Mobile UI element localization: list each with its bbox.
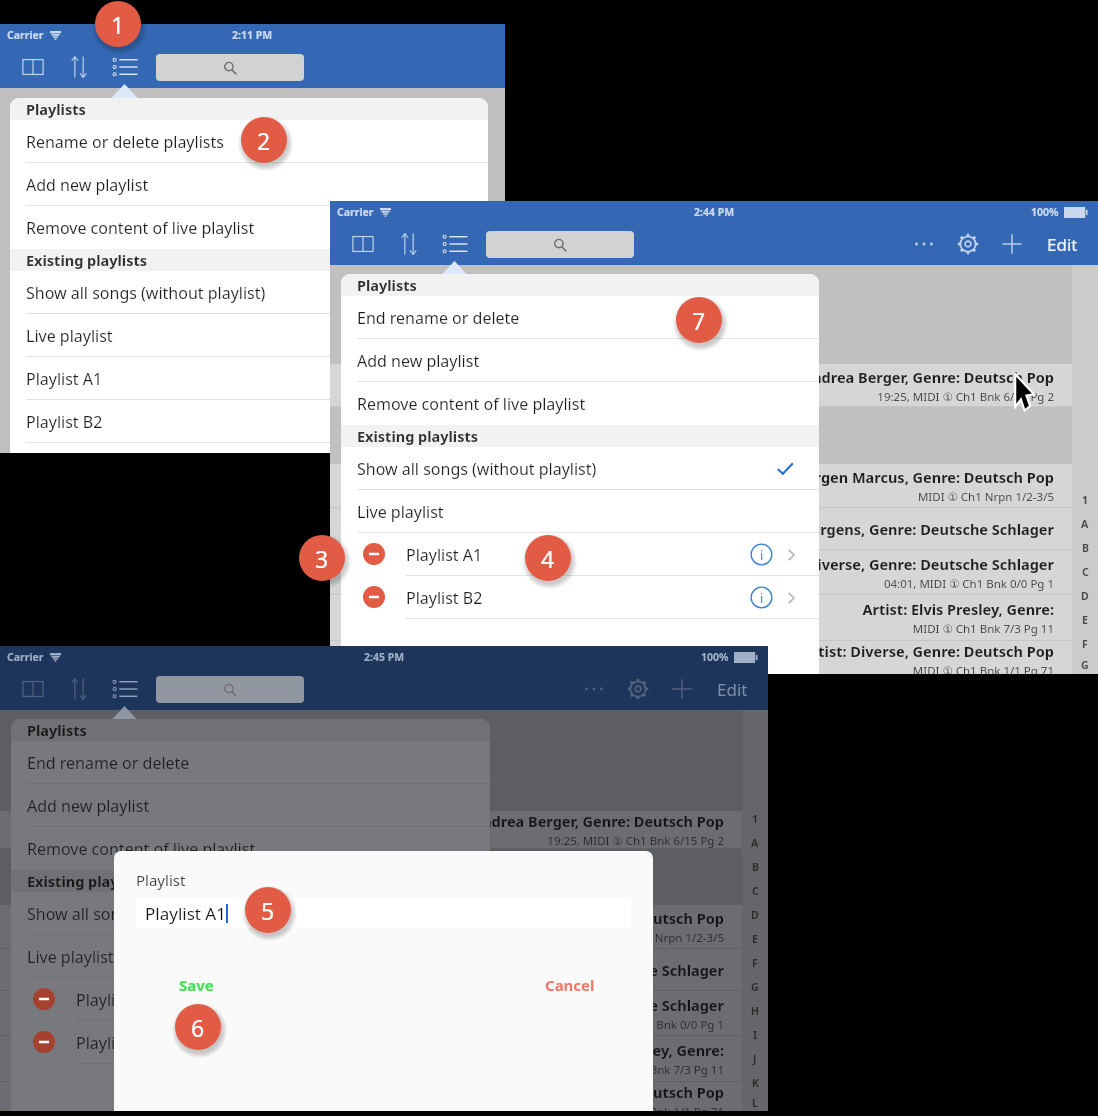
staticText: 04:01, MIDI ① Ch1 Bnk 0/0 Pg 1	[0, 1017, 724, 1033]
staticText: Rename or delete playlists	[26, 131, 224, 153]
staticText: 4	[541, 543, 555, 574]
button[interactable]: More	[907, 227, 941, 261]
button[interactable]: Live playlist	[11, 935, 490, 978]
staticText: Jürgen Marcus, Genre: Deutsch Pop	[0, 908, 724, 928]
button[interactable]: Show all songs (without playlist)	[11, 892, 490, 935]
button[interactable]: Playlists	[108, 50, 142, 84]
button[interactable]: Delete Playlist B2	[363, 586, 385, 608]
button[interactable]: Split view	[16, 672, 50, 706]
button[interactable]: Search	[486, 231, 634, 258]
button[interactable]: Jürgen Marcus, Genre: Deutsch Pop	[330, 464, 1072, 508]
button[interactable]: Andrea Berger, Genre: Deutsch Pop	[330, 364, 1072, 407]
staticText: Playlist A1	[406, 544, 483, 566]
button[interactable]: Delete Playlist A1	[363, 543, 385, 565]
staticText: 1	[111, 9, 125, 40]
button[interactable]: End rename or delete	[341, 296, 819, 339]
staticText: 1	[1082, 493, 1089, 507]
button[interactable]: Playlists	[438, 227, 472, 261]
staticText: Playlist B2	[76, 1032, 153, 1054]
button[interactable]: Delete Playlist A1	[33, 988, 55, 1010]
button[interactable]: Add	[995, 227, 1029, 261]
button[interactable]: Playlists	[108, 672, 142, 706]
button[interactable]: Playlist B2	[10, 400, 488, 443]
staticText: Show all songs (without playlist)	[27, 903, 267, 925]
button[interactable]: Playlist A1	[136, 898, 631, 928]
staticText: i	[760, 589, 764, 607]
staticText: L	[752, 1096, 758, 1110]
staticText: Existing playlists	[26, 250, 148, 270]
staticText: 7	[692, 305, 706, 336]
staticText: 2:11 PM	[232, 28, 273, 42]
staticText: 2:45 PM	[364, 650, 405, 664]
staticText: A	[1081, 517, 1089, 531]
button[interactable]: Playlist B2	[341, 576, 819, 619]
staticText: Artist: Elvis Presley, Genre:	[0, 1040, 724, 1060]
button[interactable]: : Diverse, Genre: Deutsche Schlager	[330, 550, 1072, 595]
button[interactable]: Search	[156, 676, 304, 703]
button[interactable]: Cancel	[536, 971, 604, 999]
staticText: : Diverse, Genre: Deutsche Schlager	[0, 995, 724, 1015]
button[interactable]: Add new playlist	[10, 163, 488, 206]
button[interactable]: Settings	[621, 672, 655, 706]
button[interactable]: Rename or delete playlists	[10, 120, 488, 163]
button[interactable]: Show all songs (without playlist)	[10, 271, 488, 314]
button[interactable]: Settings	[951, 227, 985, 261]
button[interactable]: Live playlist	[10, 314, 488, 357]
staticText: 100%	[701, 650, 729, 664]
button[interactable]: Artist: Diverse, Genre: Deutsch Pop	[330, 641, 1072, 674]
button[interactable]: Remove content of live playlist	[10, 206, 488, 249]
staticText: Add new playlist	[27, 795, 150, 817]
button[interactable]: · Jürgens, Genre: Deutsche Schlager	[330, 508, 1072, 550]
staticText: F	[752, 956, 758, 970]
button[interactable]: Artist: Diverse, Genre: Deutsch Pop	[0, 1082, 742, 1111]
staticText: D	[751, 908, 759, 922]
button[interactable]: Split view	[346, 227, 380, 261]
button[interactable]: Artist: Elvis Presley, Genre:	[330, 595, 1072, 641]
staticText: Artist: Elvis Presley, Genre:	[330, 599, 1054, 619]
button[interactable]: Edit	[1041, 223, 1080, 265]
staticText: MIDI ① Ch1 Nrpn 1/2-3/5	[0, 930, 724, 946]
button[interactable]: Show all songs (without playlist)	[341, 447, 819, 490]
staticText: Jürgen Marcus, Genre: Deutsch Pop	[330, 467, 1054, 487]
button[interactable]: More	[577, 672, 611, 706]
button[interactable]: Artist: Elvis Presley, Genre:	[0, 1036, 742, 1082]
button[interactable]: Save	[170, 971, 223, 999]
button[interactable]: Remove content of live playlist	[341, 382, 819, 425]
staticText: B	[1082, 541, 1089, 555]
button[interactable]: Remove content of live playlist	[11, 827, 490, 870]
staticText: Existing playlists	[27, 871, 149, 891]
staticText: C	[752, 884, 759, 898]
staticText: Show all songs (without playlist)	[26, 282, 266, 304]
button[interactable]: Add new playlist	[11, 784, 490, 827]
staticText: D	[1081, 589, 1089, 603]
staticText: 2:44 PM	[694, 205, 735, 219]
staticText: 3	[315, 543, 329, 574]
button[interactable]: Playlist B2	[11, 1021, 490, 1064]
button[interactable]: Sort	[392, 227, 426, 261]
staticText: Remove content of live playlist	[357, 393, 586, 415]
button[interactable]: Live playlist	[341, 490, 819, 533]
button[interactable]: Add	[665, 672, 699, 706]
staticText: Playlist	[136, 870, 186, 890]
button[interactable]: · Jürgens, Genre: Deutsche Schlager	[0, 949, 742, 991]
staticText: MIDI ① Ch1 Bnk 7/3 Pg 11	[330, 621, 1054, 637]
button[interactable]: Andrea Berger, Genre: Deutsch Pop	[0, 811, 742, 849]
button[interactable]: Playlist A1	[341, 533, 819, 576]
button[interactable]: Search	[156, 54, 304, 81]
staticText: · Jürgens, Genre: Deutsche Schlager	[330, 519, 1054, 539]
button[interactable]: End rename or delete	[11, 741, 490, 784]
button[interactable]: Playlist A1	[11, 978, 490, 1021]
button[interactable]: : Diverse, Genre: Deutsche Schlager	[0, 991, 742, 1036]
staticText: A	[751, 836, 759, 850]
button[interactable]: Add new playlist	[341, 339, 819, 382]
button[interactable]: Sort	[62, 50, 96, 84]
button[interactable]: Split view	[16, 50, 50, 84]
button[interactable]: Sort	[62, 672, 96, 706]
button[interactable]: Edit	[711, 668, 750, 710]
staticText: 19:25, MIDI ① Ch1 Bnk 6/15 Pg 2	[330, 389, 1054, 405]
button[interactable]: Delete Playlist B2	[33, 1031, 55, 1053]
button[interactable]: Jürgen Marcus, Genre: Deutsch Pop	[0, 905, 742, 949]
staticText: 04:01, MIDI ① Ch1 Bnk 0/0 Pg 1	[330, 576, 1054, 592]
staticText: Playlists	[357, 275, 417, 295]
button[interactable]: Playlist A1	[10, 357, 488, 400]
